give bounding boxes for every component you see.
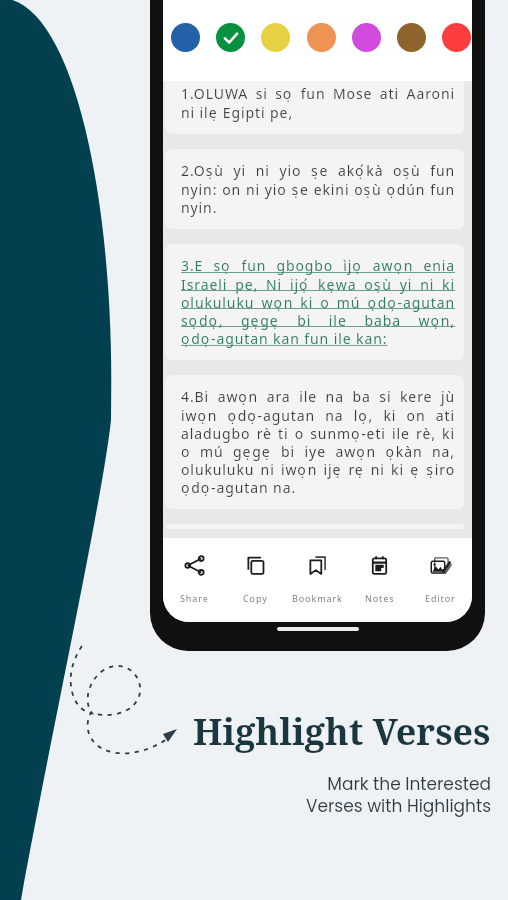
button[interactable]: 3.E sọ fun gbogbo ìjọ awọn enia Israeli …: [165, 244, 464, 360]
button[interactable]: Highlight colour: [216, 23, 245, 52]
button[interactable]: Highlight colour: [352, 23, 381, 52]
button[interactable]: Bookmark: [287, 538, 348, 604]
staticText: 2.Oṣù yi ni yio ṣe akọ́kà oṣù fun nyin: …: [181, 161, 455, 217]
staticText: Editor: [425, 592, 456, 604]
staticText: 1.OLUWA si sọ fun Mose ati Aaroni ni ilẹ…: [181, 84, 455, 122]
staticText: 3.E sọ fun gbogbo ìjọ awọn enia Israeli …: [181, 256, 455, 348]
staticText: Mark the Interested Verses with Highligh…: [305, 772, 491, 818]
button[interactable]: Highlight colour: [307, 23, 336, 52]
button[interactable]: Copy: [225, 538, 286, 604]
button[interactable]: Notes: [349, 538, 410, 604]
button[interactable]: Highlight colour: [171, 23, 200, 52]
button[interactable]: Highlight colour: [397, 23, 426, 52]
button[interactable]: 4.Bi awọn ara ile na ba si kere jù iwọn …: [165, 375, 464, 509]
staticText: 4.Bi awọn ara ile na ba si kere jù iwọn …: [181, 387, 455, 497]
staticText: Copy: [243, 592, 268, 604]
staticText: Highlight Verses: [193, 707, 491, 756]
button[interactable]: Highlight colour: [261, 23, 290, 52]
button[interactable]: 1.OLUWA si sọ fun Mose ati Aaroni ni ilẹ…: [165, 81, 464, 134]
button[interactable]: Highlight colour: [442, 23, 471, 52]
staticText: Notes: [365, 592, 395, 604]
button[interactable]: Share: [164, 538, 225, 604]
button[interactable]: 2.Oṣù yi ni yio ṣe akọ́kà oṣù fun nyin: …: [165, 149, 464, 229]
staticText: Bookmark: [292, 592, 343, 604]
button[interactable]: Editor: [410, 538, 471, 604]
staticText: Share: [180, 592, 209, 604]
